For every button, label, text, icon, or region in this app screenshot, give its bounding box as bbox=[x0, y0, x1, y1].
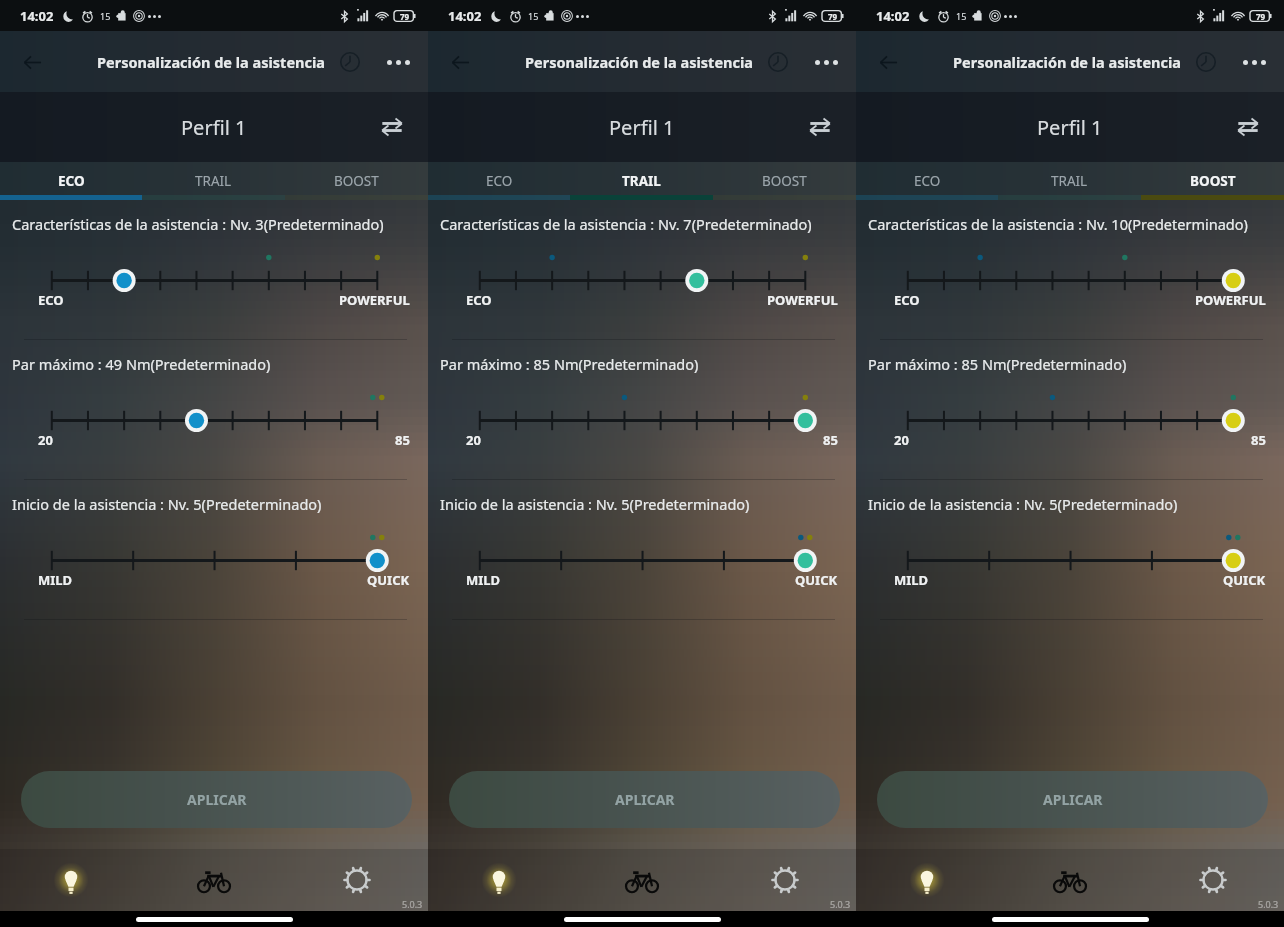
button[interactable]: TRAIL bbox=[570, 162, 713, 200]
staticText: Inicio de la asistencia : Nv. 5(Predeter… bbox=[868, 494, 1178, 514]
staticText: POWERFUL bbox=[767, 291, 838, 309]
staticText: TRAIL bbox=[195, 172, 232, 190]
staticText: POWERFUL bbox=[1195, 291, 1266, 309]
staticText: 14:02 bbox=[20, 7, 54, 25]
staticText: Personalización de la asistencia bbox=[97, 52, 325, 72]
button[interactable]: ECO bbox=[856, 162, 998, 200]
staticText: 79 bbox=[1256, 11, 1266, 22]
staticText: Personalización de la asistencia bbox=[953, 52, 1181, 72]
button[interactable]: More options bbox=[804, 40, 848, 84]
button[interactable]: BOOST bbox=[1141, 162, 1284, 200]
staticText: ECO bbox=[914, 172, 941, 190]
staticText: POWERFUL bbox=[339, 291, 410, 309]
staticText: TRAIL bbox=[622, 172, 661, 190]
button[interactable]: History bbox=[1186, 42, 1226, 82]
staticText: Personalización de la asistencia bbox=[525, 52, 753, 72]
button[interactable]: Assist mode bbox=[0, 849, 142, 911]
staticText: 5.0.3 bbox=[402, 898, 423, 910]
staticText: ECO bbox=[894, 291, 920, 309]
staticText: QUICK bbox=[1223, 571, 1266, 589]
button[interactable]: Bike bbox=[570, 849, 713, 911]
staticText: Perfil 1 bbox=[609, 114, 675, 141]
button[interactable]: Bike bbox=[998, 849, 1141, 911]
button[interactable]: Settings bbox=[285, 849, 428, 911]
button[interactable]: APLICAR bbox=[877, 771, 1268, 828]
staticText: 79 bbox=[400, 11, 410, 22]
staticText: Características de la asistencia : Nv. 7… bbox=[440, 214, 812, 234]
button[interactable]: More options bbox=[1232, 40, 1276, 84]
staticText: 20 bbox=[894, 431, 909, 449]
staticText: Inicio de la asistencia : Nv. 5(Predeter… bbox=[440, 494, 750, 514]
button[interactable]: Settings bbox=[1141, 849, 1284, 911]
button[interactable]: BOOST bbox=[713, 162, 856, 200]
button[interactable]: Switch profile bbox=[800, 107, 840, 147]
staticText: 14:02 bbox=[876, 7, 910, 25]
staticText: BOOST bbox=[334, 172, 379, 190]
button[interactable]: TRAIL bbox=[142, 162, 285, 200]
button[interactable]: TRAIL bbox=[998, 162, 1141, 200]
button[interactable]: Switch profile bbox=[372, 107, 412, 147]
staticText: APLICAR bbox=[187, 790, 247, 809]
staticText: ECO bbox=[38, 291, 64, 309]
staticText: Características de la asistencia : Nv. 1… bbox=[868, 214, 1248, 234]
button[interactable]: Settings bbox=[713, 849, 856, 911]
staticText: APLICAR bbox=[615, 790, 675, 809]
button[interactable]: History bbox=[758, 42, 798, 82]
staticText: QUICK bbox=[367, 571, 410, 589]
staticText: Par máximo : 85 Nm(Predeterminado) bbox=[440, 354, 699, 374]
staticText: APLICAR bbox=[1043, 790, 1103, 809]
staticText: MILD bbox=[38, 571, 73, 589]
button[interactable]: More options bbox=[376, 40, 420, 84]
staticText: 15 bbox=[528, 10, 539, 22]
button[interactable]: ECO bbox=[0, 162, 142, 200]
staticText: BOOST bbox=[762, 172, 807, 190]
staticText: TRAIL bbox=[1051, 172, 1088, 190]
button[interactable]: Bike bbox=[142, 849, 285, 911]
staticText: 79 bbox=[828, 11, 838, 22]
staticText: Inicio de la asistencia : Nv. 5(Predeter… bbox=[12, 494, 322, 514]
staticText: Par máximo : 85 Nm(Predeterminado) bbox=[868, 354, 1127, 374]
staticText: ECO bbox=[466, 291, 492, 309]
staticText: ECO bbox=[486, 172, 513, 190]
staticText: Perfil 1 bbox=[181, 114, 247, 141]
staticText: 20 bbox=[466, 431, 481, 449]
staticText: Perfil 1 bbox=[1037, 114, 1103, 141]
staticText: BOOST bbox=[1190, 172, 1236, 190]
staticText: MILD bbox=[466, 571, 501, 589]
button[interactable]: Assist mode bbox=[856, 849, 998, 911]
staticText: Características de la asistencia : Nv. 3… bbox=[12, 214, 384, 234]
staticText: 15 bbox=[956, 10, 967, 22]
staticText: 20 bbox=[38, 431, 53, 449]
button[interactable]: APLICAR bbox=[21, 771, 412, 828]
staticText: 5.0.3 bbox=[1258, 898, 1279, 910]
staticText: 14:02 bbox=[448, 7, 482, 25]
button[interactable]: Switch profile bbox=[1228, 107, 1268, 147]
button[interactable]: Assist mode bbox=[428, 849, 570, 911]
button[interactable]: APLICAR bbox=[449, 771, 840, 828]
staticText: 15 bbox=[100, 10, 111, 22]
staticText: ECO bbox=[58, 172, 85, 190]
staticText: QUICK bbox=[795, 571, 838, 589]
button[interactable]: ECO bbox=[428, 162, 570, 200]
staticText: 85 bbox=[395, 431, 410, 449]
button[interactable]: History bbox=[330, 42, 370, 82]
staticText: 85 bbox=[1251, 431, 1266, 449]
staticText: 85 bbox=[823, 431, 838, 449]
staticText: Par máximo : 49 Nm(Predeterminado) bbox=[12, 354, 271, 374]
staticText: 5.0.3 bbox=[830, 898, 851, 910]
button[interactable]: BOOST bbox=[285, 162, 428, 200]
staticText: MILD bbox=[894, 571, 929, 589]
